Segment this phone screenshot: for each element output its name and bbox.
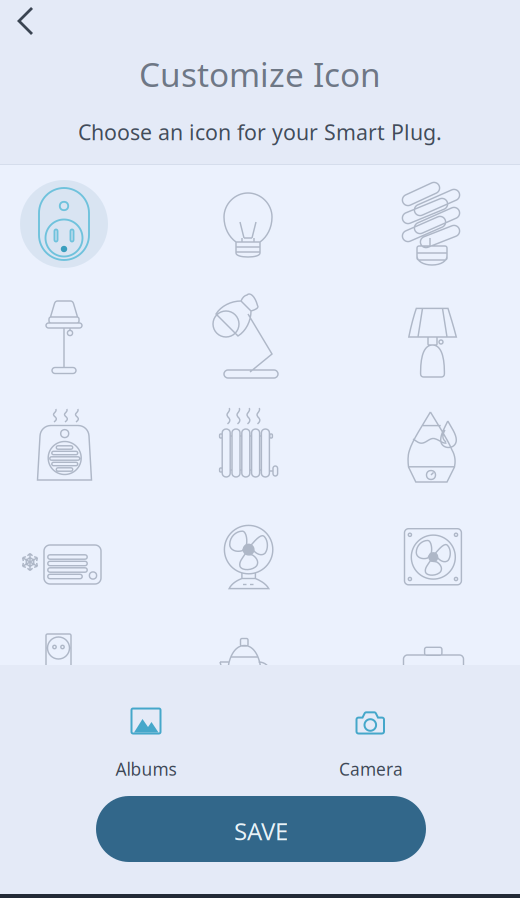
button[interactable]: Desk lamp — [188, 276, 308, 396]
button[interactable]: Back — [6, 0, 58, 44]
button[interactable]: Smart plug — [4, 164, 124, 284]
button[interactable]: Radiator — [188, 388, 308, 508]
button[interactable]: SAVE — [96, 796, 426, 862]
staticText: Albums — [115, 757, 176, 780]
button[interactable]: Albums — [71, 696, 221, 788]
button[interactable]: Light bulb — [188, 164, 308, 284]
button[interactable]: Wall socket — [4, 612, 124, 732]
button[interactable]: Energy-saving bulb — [372, 164, 492, 284]
button[interactable]: Camera — [296, 696, 446, 788]
button[interactable]: Fan heater — [4, 388, 124, 508]
button[interactable]: Exhaust fan — [372, 500, 492, 620]
button[interactable]: Air conditioner — [4, 500, 124, 620]
button[interactable]: Table lamp — [372, 276, 492, 396]
button[interactable]: Floor lamp — [4, 276, 124, 396]
button[interactable]: Toaster — [372, 612, 492, 732]
staticText: Customize Icon — [139, 52, 381, 96]
button[interactable]: Fan — [188, 500, 308, 620]
button[interactable]: Humidifier — [372, 388, 492, 508]
staticText: SAVE — [234, 815, 288, 847]
staticText: Choose an icon for your Smart Plug. — [78, 118, 442, 146]
staticText: Camera — [339, 757, 403, 780]
button[interactable]: Kettle — [188, 612, 308, 732]
